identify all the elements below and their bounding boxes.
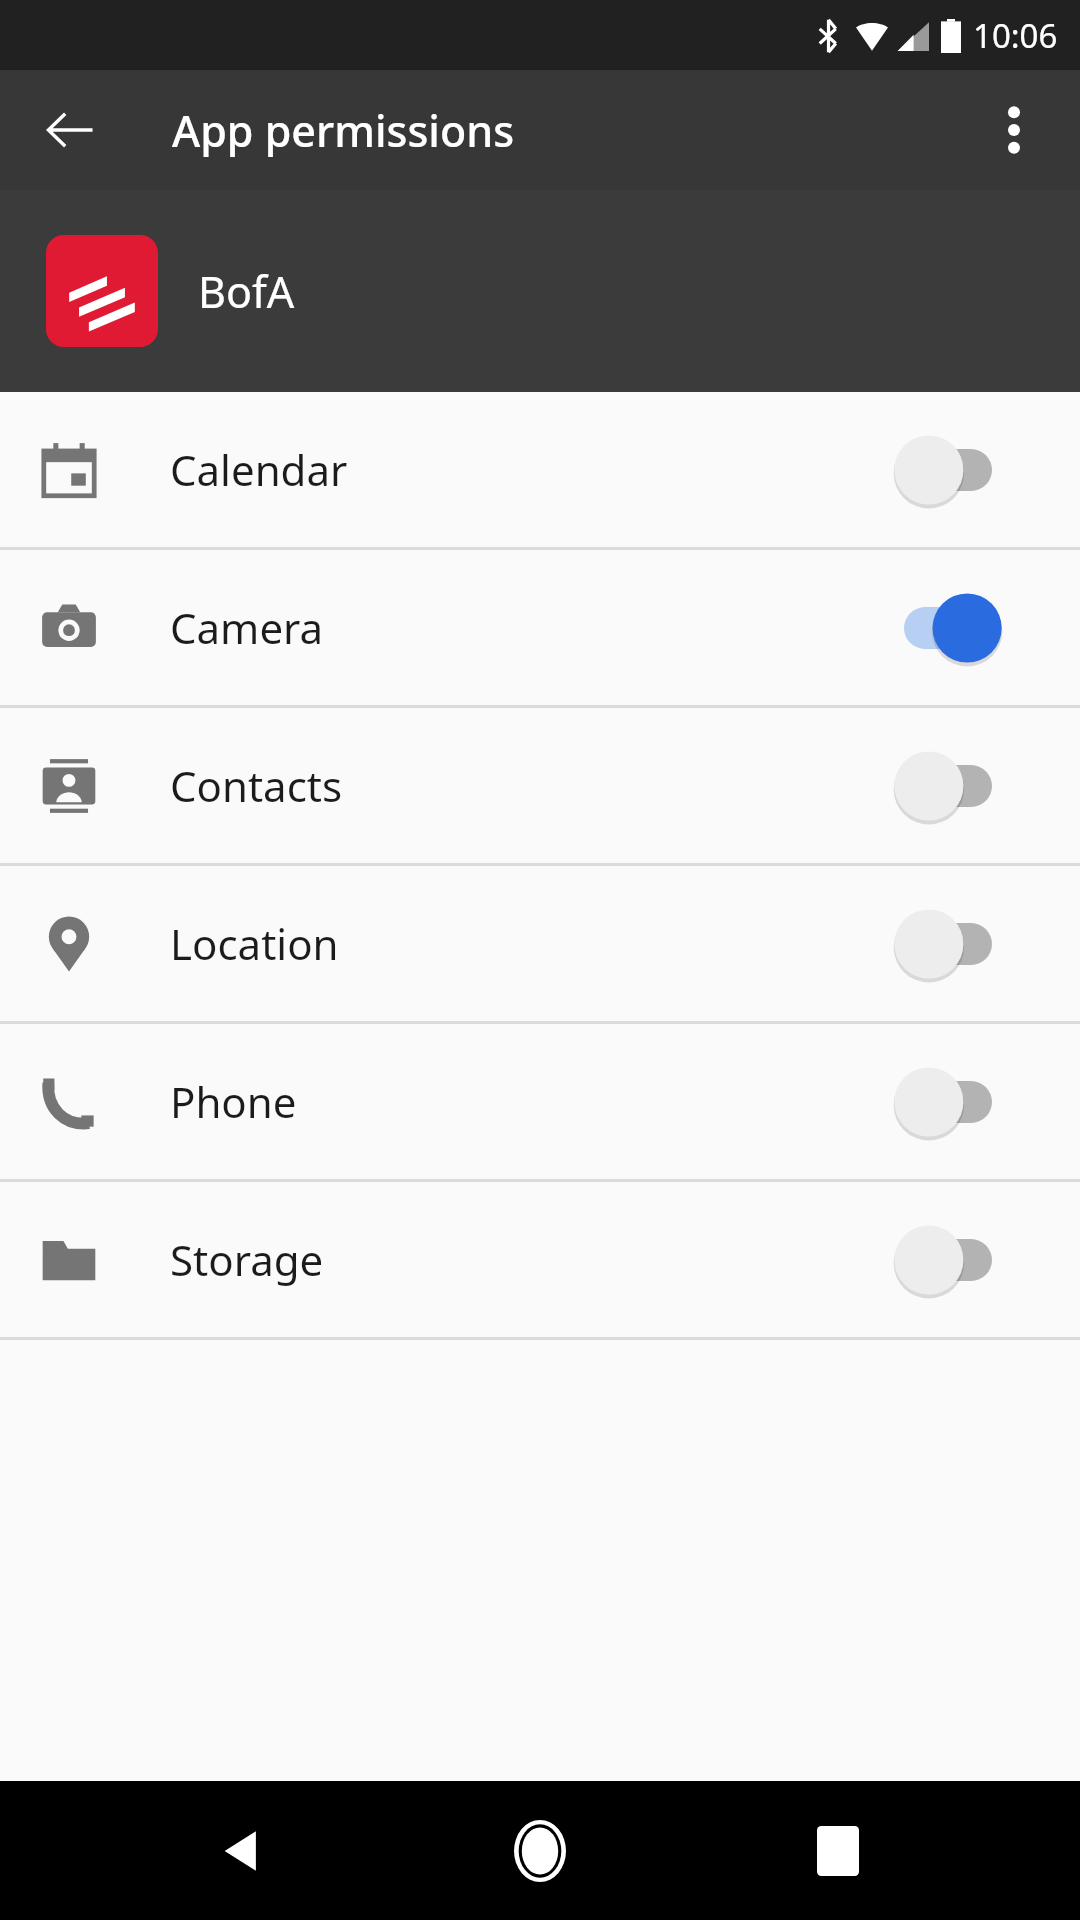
button[interactable]: More options xyxy=(968,84,1060,176)
staticText: Camera xyxy=(170,599,324,656)
button[interactable] xyxy=(888,738,1008,834)
staticText: Phone xyxy=(170,1073,297,1130)
staticText: Calendar xyxy=(170,441,348,498)
button[interactable]: Home xyxy=(485,1796,595,1906)
staticText: Storage xyxy=(170,1231,324,1288)
button[interactable]: Phone xyxy=(0,1024,1080,1179)
button[interactable]: Back xyxy=(24,84,116,176)
button[interactable]: Contacts xyxy=(0,708,1080,863)
button[interactable]: Location xyxy=(0,866,1080,1021)
staticText: Location xyxy=(170,915,339,972)
button[interactable] xyxy=(888,1054,1008,1150)
button[interactable]: Camera xyxy=(0,550,1080,705)
button[interactable]: Calendar xyxy=(0,392,1080,547)
staticText: 10:06 xyxy=(973,13,1058,58)
button[interactable] xyxy=(888,422,1008,518)
button[interactable] xyxy=(888,896,1008,992)
button[interactable]: Recent apps xyxy=(783,1796,893,1906)
button[interactable] xyxy=(888,580,1008,676)
button[interactable]: Back xyxy=(188,1796,298,1906)
staticText: App permissions xyxy=(172,101,515,160)
button[interactable] xyxy=(888,1212,1008,1308)
button[interactable]: BofA xyxy=(0,190,1080,392)
staticText: Contacts xyxy=(170,757,343,814)
button[interactable]: Storage xyxy=(0,1182,1080,1337)
staticText: BofA xyxy=(198,262,295,321)
